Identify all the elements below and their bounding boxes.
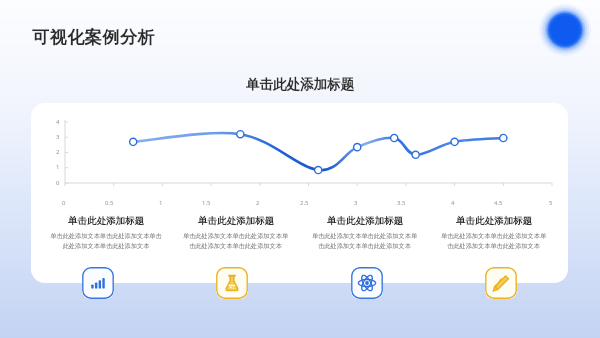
- staticText: 0.5: [105, 199, 114, 207]
- staticText: 5: [549, 199, 553, 207]
- staticText: 单击此处添加标题: [456, 215, 532, 227]
- staticText: 2: [56, 148, 60, 156]
- staticText: 1.5: [202, 199, 211, 207]
- staticText: 2: [256, 199, 260, 207]
- staticText: 单击此处添加标题: [198, 215, 274, 227]
- staticText: 0: [62, 199, 66, 207]
- staticText: 可视化案例分析: [32, 27, 156, 48]
- staticText: 3: [56, 133, 60, 141]
- staticText: 3: [354, 199, 358, 207]
- button[interactable]: 编辑内容: [485, 267, 517, 299]
- button[interactable]: 科学研究: [351, 267, 383, 299]
- staticText: 单击此处添加标题: [246, 76, 354, 93]
- staticText: 单击此处添加文本单击此处添加文本单击此处添加文本单击此处添加文本: [180, 232, 291, 250]
- button[interactable]: 数据图表: [82, 267, 114, 299]
- staticText: 4: [451, 199, 455, 207]
- button[interactable]: 单击此处添加标题: [309, 215, 420, 250]
- staticText: 单击此处添加文本单击此处添加文本单击此处添加文本单击此处添加文本: [438, 232, 549, 250]
- button[interactable]: 单击此处添加标题: [50, 215, 162, 250]
- staticText: 3.5: [397, 199, 406, 207]
- button[interactable]: 单击此处添加标题: [180, 215, 291, 250]
- staticText: 4: [56, 118, 60, 126]
- staticText: 单击此处添加标题: [327, 215, 403, 227]
- staticText: 2.5: [300, 199, 309, 207]
- staticText: 1: [56, 163, 60, 171]
- staticText: 4.5: [494, 199, 503, 207]
- button[interactable]: 实验分析: [216, 267, 248, 299]
- staticText: 0: [56, 179, 60, 187]
- staticText: 1: [159, 199, 163, 207]
- button[interactable]: 单击此处添加标题: [438, 215, 549, 250]
- staticText: 单击此处添加文本单击此处添加文本单击此处添加文本单击此处添加文本: [309, 232, 420, 250]
- staticText: 单击此处添加文本单击此处添加文本单击此处添加文本单击此处添加文本: [50, 232, 162, 250]
- staticText: 单击此处添加标题: [68, 215, 144, 227]
